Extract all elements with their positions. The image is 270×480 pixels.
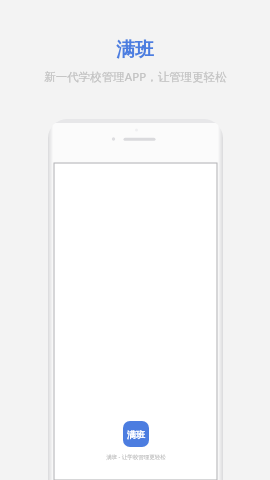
staticText: 新一代学校管理APP，让管理更轻松 xyxy=(44,69,227,85)
staticText: 满班 - 让学校管理更轻松 xyxy=(106,453,166,461)
staticText: 满班 xyxy=(127,429,145,440)
staticText: 满班 xyxy=(116,38,154,62)
button[interactable]: 满班 application icon xyxy=(123,421,149,447)
